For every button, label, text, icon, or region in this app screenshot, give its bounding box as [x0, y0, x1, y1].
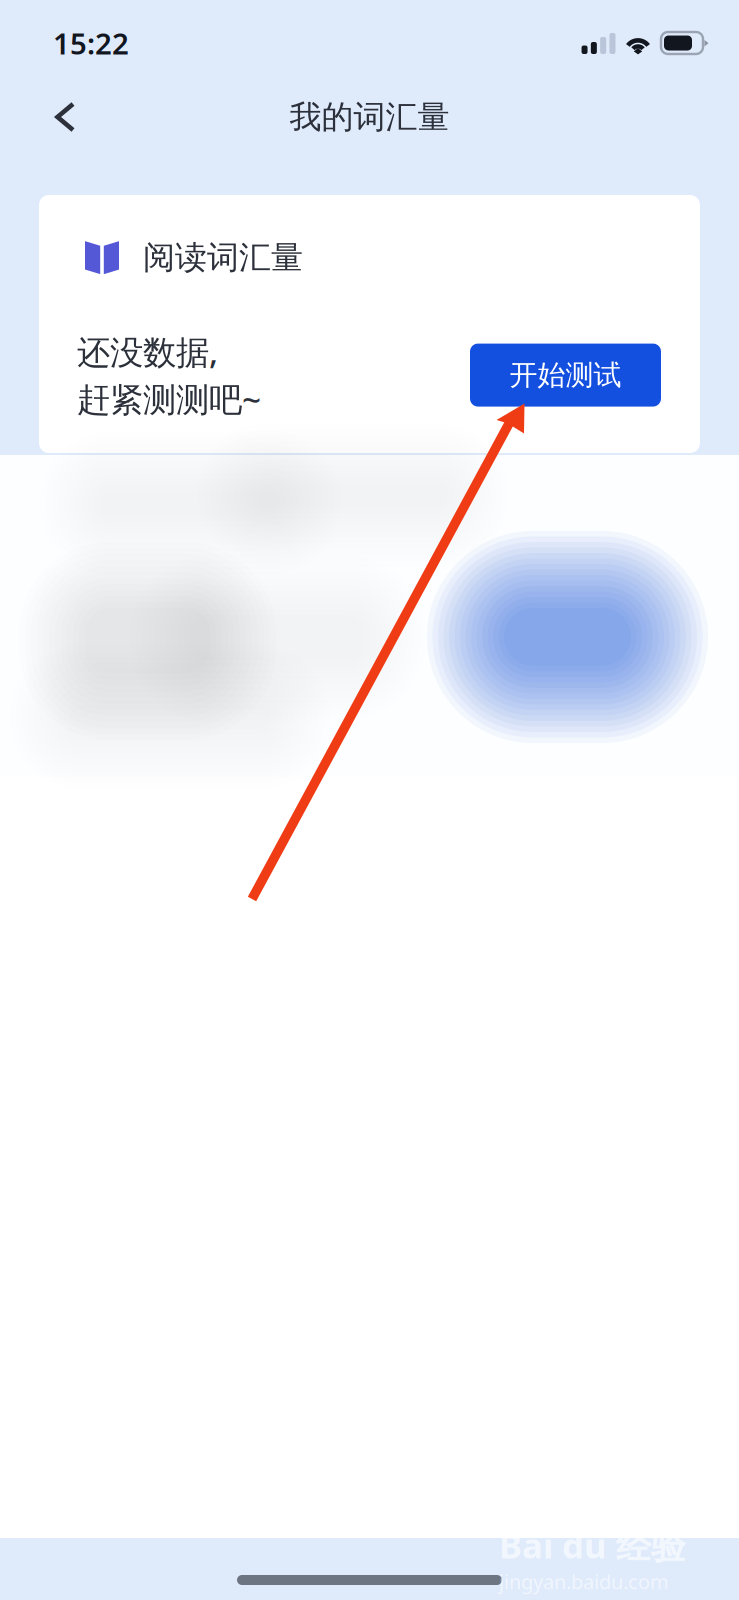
- staticText: Bai du 经验: [499, 1522, 686, 1568]
- button[interactable]: 开始测试: [470, 344, 661, 407]
- staticText: 15:22: [53, 23, 129, 62]
- staticText: 我的词汇量: [289, 97, 449, 137]
- staticText: 开始测试: [509, 358, 621, 392]
- button[interactable]: Back: [31, 83, 100, 150]
- staticText: jingyan.baidu.com: [499, 1568, 669, 1595]
- staticText: 阅读词汇量: [143, 238, 303, 277]
- staticText: 还没数据,: [77, 329, 218, 374]
- staticText: 赶紧测测吧~: [77, 377, 261, 421]
